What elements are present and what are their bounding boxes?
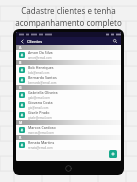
staticText: Amon Da Silva bbox=[28, 50, 53, 55]
button[interactable]: Gisele Prado bbox=[16, 110, 121, 120]
staticText: acompanhamento completo bbox=[15, 17, 122, 28]
button[interactable]: Renata Martins bbox=[16, 140, 121, 150]
staticText: Clientes bbox=[27, 39, 43, 44]
button[interactable]: Bernardo Santos bbox=[16, 75, 121, 85]
staticText: Bob Henriques bbox=[28, 65, 54, 70]
staticText: Gisele Prado bbox=[28, 110, 50, 115]
staticText: Gabriella Oliveira bbox=[28, 90, 58, 95]
staticText: A bbox=[19, 45, 22, 50]
staticText: renata@email.com bbox=[28, 146, 53, 150]
staticText: gabi@email.com bbox=[28, 96, 50, 100]
button[interactable]: Adicionar cliente bbox=[109, 150, 117, 158]
staticText: G bbox=[19, 85, 22, 90]
button[interactable]: Bob Henriques bbox=[16, 65, 121, 75]
staticText: gisele@email.com bbox=[28, 116, 52, 120]
button[interactable]: Gabriella Oliveira bbox=[16, 90, 121, 100]
staticText: Giovana Costa bbox=[28, 100, 53, 105]
staticText: B bbox=[19, 60, 22, 65]
staticText: gio@email.com bbox=[28, 106, 49, 110]
button[interactable]: Giovana Costa bbox=[16, 100, 121, 110]
button[interactable]: Back bbox=[19, 38, 25, 44]
staticText: Bernardo Santos bbox=[28, 75, 57, 80]
staticText: Marcos Cardoso bbox=[28, 125, 56, 130]
staticText: M bbox=[19, 120, 23, 125]
staticText: R bbox=[19, 135, 22, 140]
staticText: Cadastre clientes e tenha bbox=[21, 5, 116, 16]
staticText: bernardo@email.com bbox=[28, 81, 57, 85]
button[interactable]: Amon Da Silva bbox=[16, 50, 121, 60]
button[interactable]: Search bbox=[112, 38, 118, 44]
staticText: amon@email.com bbox=[28, 56, 52, 60]
button[interactable]: Home bbox=[65, 165, 72, 172]
staticText: Renata Martins bbox=[28, 140, 55, 145]
staticText: marcos@email.com bbox=[28, 131, 54, 135]
button[interactable]: Marcos Cardoso bbox=[16, 125, 121, 135]
staticText: bob@email.com bbox=[28, 71, 50, 75]
